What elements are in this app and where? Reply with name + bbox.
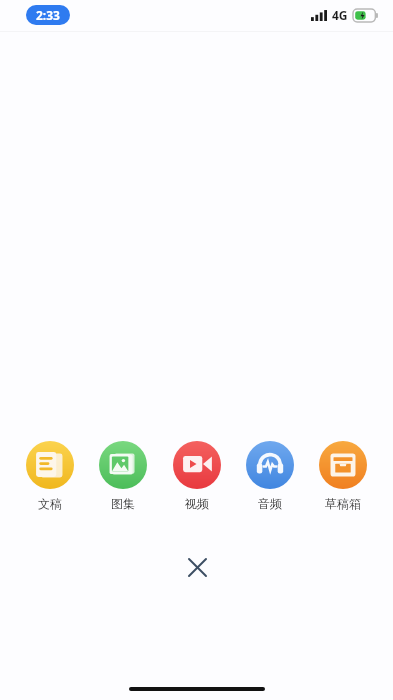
button[interactable]: 音频 <box>237 439 303 513</box>
staticText: 文稿 <box>38 496 62 511</box>
staticText: 音频 <box>258 496 282 511</box>
staticText: 视频 <box>185 496 209 511</box>
staticText: 4G <box>332 7 348 23</box>
button[interactable]: 草稿箱 <box>310 439 376 513</box>
button[interactable]: 图集 <box>90 439 156 513</box>
button[interactable]: 视频 <box>164 439 230 513</box>
staticText: 图集 <box>111 496 135 511</box>
staticText: 2:33 <box>36 7 60 23</box>
button[interactable]: 文稿 <box>17 439 83 513</box>
staticText: 草稿箱 <box>325 496 361 511</box>
button[interactable]: Close <box>175 545 219 589</box>
